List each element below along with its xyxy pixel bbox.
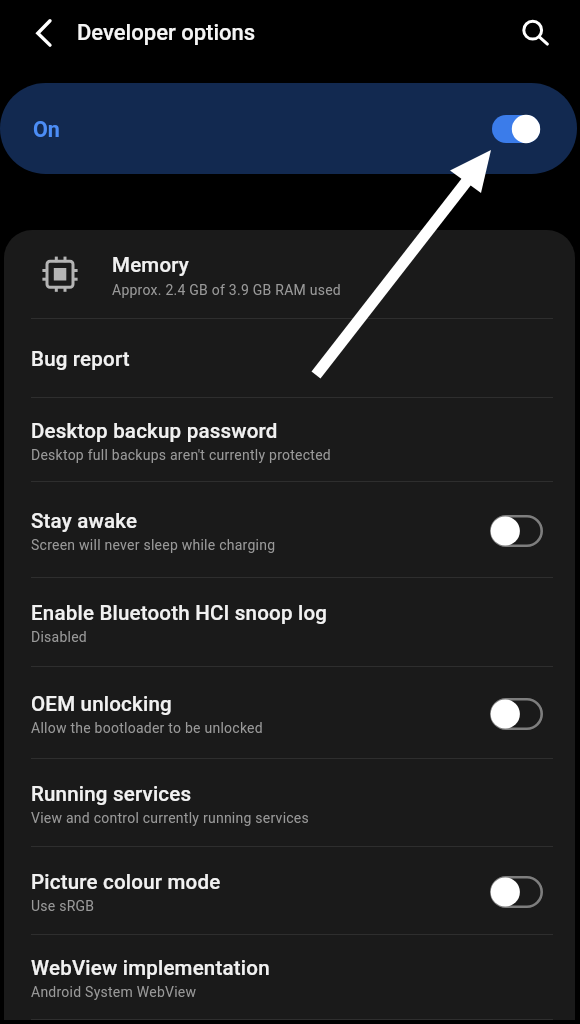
staticText: Desktop backup password bbox=[31, 419, 278, 443]
staticText: Screen will never sleep while charging bbox=[31, 537, 276, 553]
staticText: Disabled bbox=[31, 629, 88, 645]
staticText: Picture colour mode bbox=[31, 870, 221, 894]
button[interactable]: Desktop backup password bbox=[4, 398, 575, 481]
button[interactable]: Running services bbox=[4, 759, 575, 846]
staticText: Allow the bootloader to be unlocked bbox=[31, 720, 263, 736]
staticText: Android System WebView bbox=[31, 984, 197, 1000]
button[interactable]: Bug report bbox=[4, 319, 575, 397]
button[interactable]: Picture colour mode bbox=[4, 847, 575, 934]
button[interactable]: On bbox=[0, 83, 577, 174]
button[interactable]: Memory bbox=[4, 230, 575, 318]
staticText: Desktop full backups aren't currently pr… bbox=[31, 447, 331, 463]
staticText: Stay awake bbox=[31, 509, 138, 533]
staticText: Running services bbox=[31, 782, 192, 806]
staticText: View and control currently running servi… bbox=[31, 810, 310, 826]
button[interactable]: Back bbox=[19, 11, 63, 55]
staticText: Approx. 2.4 GB of 3.9 GB RAM used bbox=[112, 282, 341, 298]
button[interactable]: Enable Bluetooth HCI snoop log bbox=[4, 578, 575, 666]
staticText: Developer options bbox=[77, 20, 256, 46]
button[interactable]: OEM unlocking bbox=[4, 667, 575, 758]
button[interactable]: Search bbox=[511, 8, 555, 52]
staticText: Memory bbox=[112, 253, 190, 277]
staticText: WebView implementation bbox=[31, 956, 270, 980]
staticText: OEM unlocking bbox=[31, 692, 172, 716]
button[interactable]: Stay awake bbox=[4, 482, 575, 577]
staticText: Enable Bluetooth HCI snoop log bbox=[31, 601, 328, 625]
button[interactable]: WebView implementation bbox=[4, 935, 575, 1019]
staticText: Use sRGB bbox=[31, 898, 95, 914]
staticText: Bug report bbox=[31, 347, 130, 371]
staticText: On bbox=[33, 117, 60, 142]
